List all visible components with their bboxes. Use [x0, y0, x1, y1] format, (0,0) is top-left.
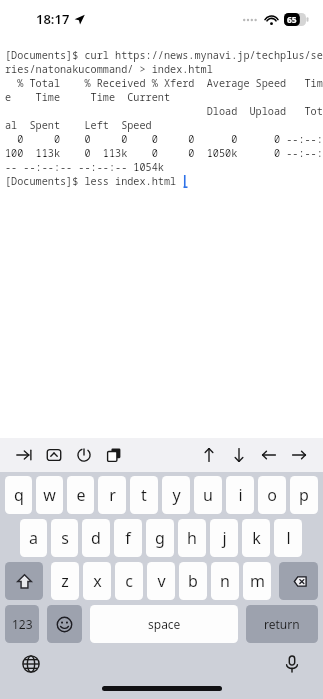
button[interactable]: v [147, 562, 175, 600]
button[interactable]: p [290, 476, 318, 514]
staticText: p [299, 484, 309, 506]
button[interactable]: q [5, 476, 32, 514]
button[interactable]: h [178, 519, 206, 557]
staticText: g [155, 527, 165, 549]
button[interactable]: Right [289, 445, 309, 465]
button[interactable]: o [258, 476, 286, 514]
button[interactable]: Dictation [279, 651, 305, 677]
staticText: h [187, 527, 197, 549]
button[interactable]: return [246, 605, 318, 643]
button[interactable]: w [36, 476, 63, 514]
staticText: u [203, 484, 213, 506]
staticText: 123 [12, 616, 33, 632]
button[interactable]: c [115, 562, 143, 600]
staticText: c [125, 570, 133, 592]
button[interactable]: n [211, 562, 239, 600]
button[interactable]: j [210, 519, 238, 557]
staticText: Dload Upload Tot [5, 104, 323, 118]
button[interactable]: Change keyboard [18, 651, 44, 677]
button[interactable]: g [146, 519, 174, 557]
staticText: [Documents]$ curl https://news.mynavi.jp… [5, 48, 323, 62]
button[interactable]: Left [259, 445, 279, 465]
button[interactable]: f [114, 519, 142, 557]
button[interactable]: 123 [5, 605, 39, 643]
staticText: -- --:--:-- --:--:-- 1054k [5, 160, 164, 174]
staticText: f [125, 527, 131, 549]
staticText: l [286, 527, 291, 549]
staticText: y [172, 484, 181, 506]
button[interactable]: b [179, 562, 207, 600]
button[interactable]: Up [199, 445, 219, 465]
button[interactable]: Shift [5, 562, 43, 600]
staticText: w [43, 484, 56, 506]
button[interactable]: x [83, 562, 111, 600]
button[interactable]: l [274, 519, 302, 557]
staticText: t [141, 484, 147, 506]
button[interactable]: Emoji [47, 605, 82, 643]
staticText: [Documents]$ less index.html [5, 174, 183, 188]
button[interactable]: d [82, 519, 110, 557]
staticText: k [252, 527, 261, 549]
staticText: x [93, 570, 102, 592]
staticText: n [220, 570, 230, 592]
staticText: a [29, 527, 38, 549]
staticText: v [157, 570, 166, 592]
staticText: s [61, 527, 69, 549]
staticText: j [222, 527, 227, 549]
staticText: al Spent Left Speed [5, 118, 152, 132]
staticText: space [148, 616, 181, 632]
button[interactable]: m [243, 562, 271, 600]
staticText: e [76, 484, 86, 506]
button[interactable]: u [194, 476, 222, 514]
staticText: % Total % Received % Xferd Average Speed… [5, 76, 323, 90]
staticText: 100 113k 0 113k 0 0 1050k 0 --:--: [5, 146, 323, 160]
button[interactable]: r [98, 476, 126, 514]
button[interactable]: z [51, 562, 79, 600]
button[interactable]: t [130, 476, 158, 514]
staticText: z [61, 570, 69, 592]
staticText: 18:17 [36, 10, 70, 28]
button[interactable]: s [51, 519, 78, 557]
button[interactable]: a [20, 519, 47, 557]
staticText: o [267, 484, 277, 506]
button[interactable]: Undo [74, 445, 94, 465]
button[interactable]: Control [44, 445, 64, 465]
staticText: 0 0 0 0 0 0 0 0 --:--: [5, 132, 323, 146]
button[interactable]: Paste [104, 445, 124, 465]
button[interactable]: e [67, 476, 94, 514]
button[interactable]: i [226, 476, 254, 514]
staticText: e Time Time Current [5, 90, 171, 104]
button[interactable]: k [242, 519, 270, 557]
button[interactable]: Tab [14, 445, 34, 465]
staticText: r [109, 484, 116, 506]
staticText: b [188, 570, 198, 592]
button[interactable]: Backspace [279, 562, 318, 600]
staticText: i [238, 484, 243, 506]
staticText: return [264, 616, 300, 632]
staticText: ries/natonakucommand/ > index.html [5, 62, 213, 76]
button[interactable]: space [90, 605, 238, 643]
staticText: 65 [287, 14, 297, 26]
button[interactable]: Down [229, 445, 249, 465]
staticText: q [14, 484, 24, 506]
staticText: m [250, 570, 265, 592]
staticText: d [91, 527, 101, 549]
button[interactable]: y [162, 476, 190, 514]
